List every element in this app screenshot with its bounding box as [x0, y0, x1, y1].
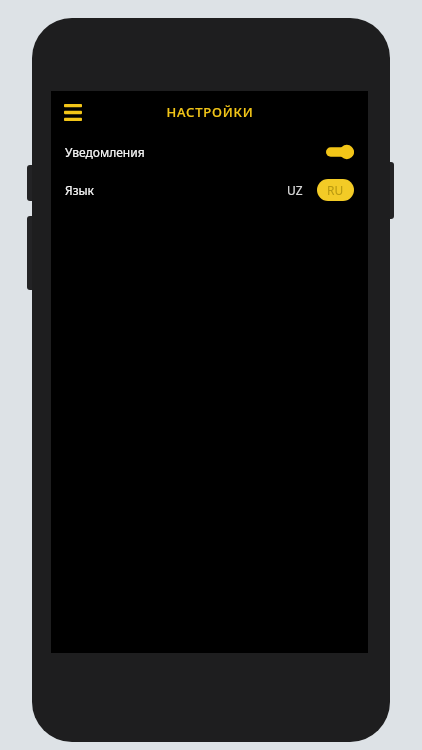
button[interactable]: Уведомления	[51, 133, 368, 171]
staticText: НАСТРОЙКИ	[166, 103, 254, 121]
staticText: RU	[327, 182, 344, 198]
staticText: UZ	[287, 182, 303, 198]
button[interactable]: RU	[317, 179, 354, 201]
staticText: Язык	[65, 182, 94, 198]
button[interactable]: UZ	[280, 178, 310, 202]
button[interactable]: Notifications toggle	[326, 143, 354, 161]
button[interactable]: Menu	[58, 97, 88, 127]
staticText: Уведомления	[65, 144, 145, 160]
